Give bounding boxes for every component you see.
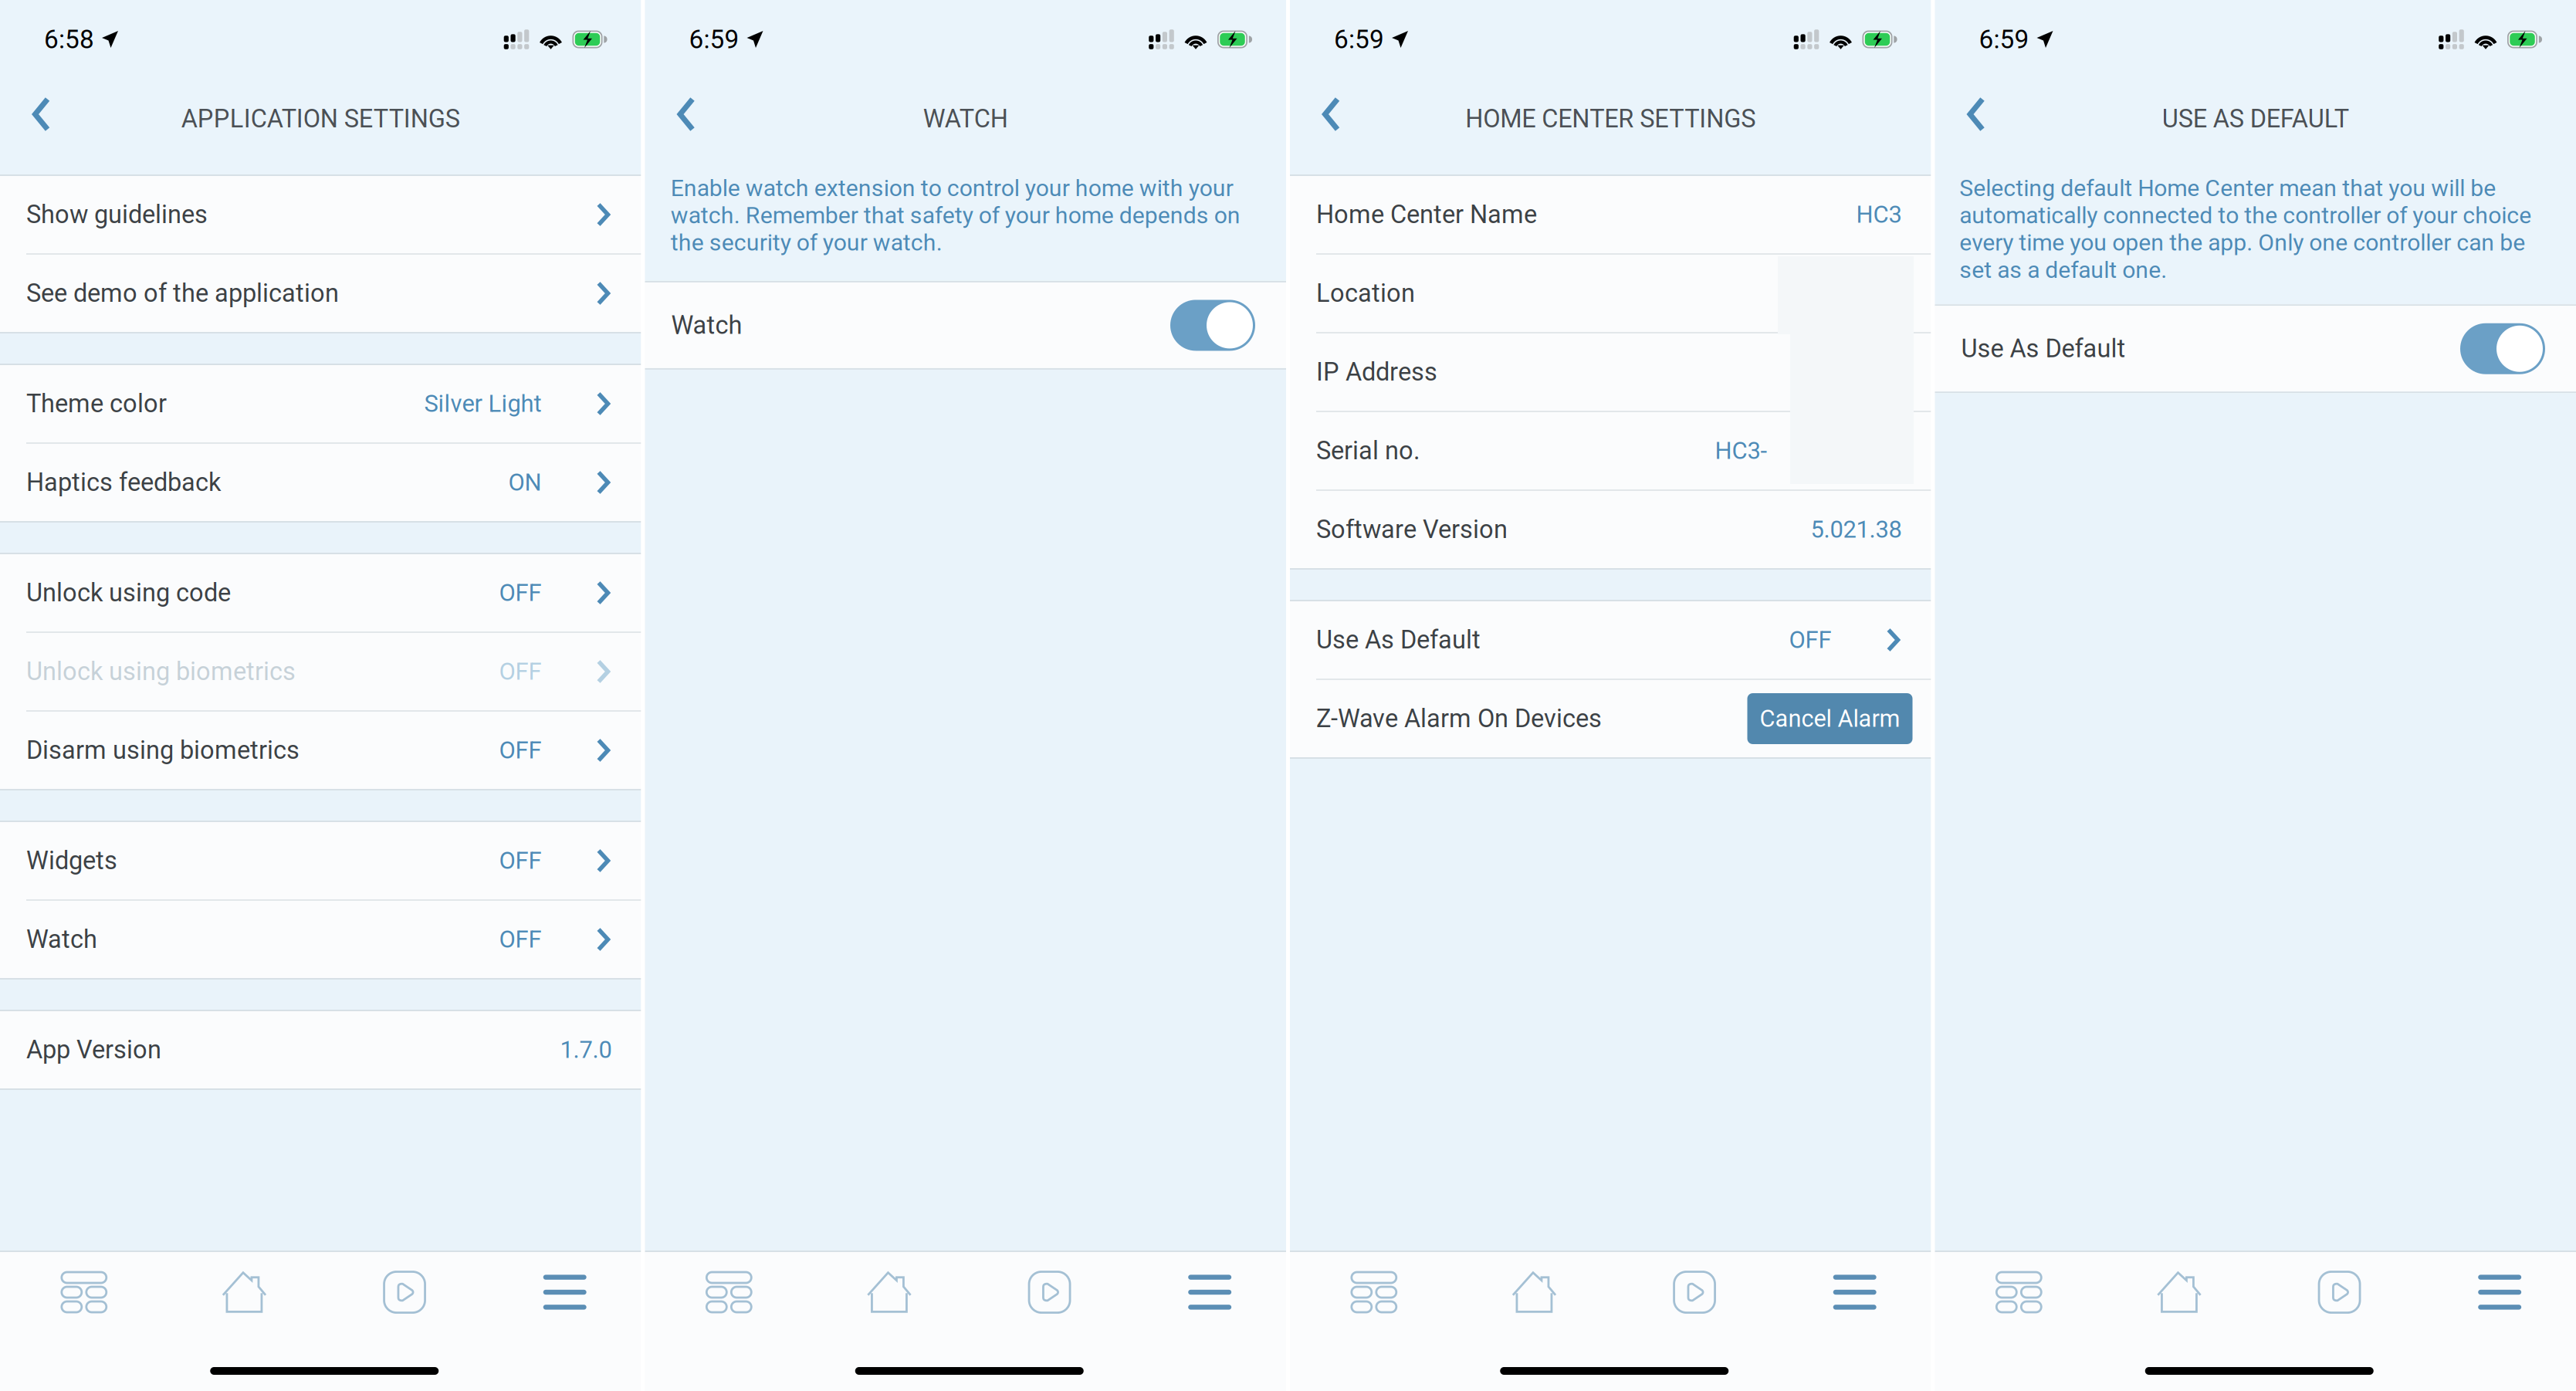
- button[interactable]: Use As Default: [1935, 306, 2576, 392]
- button[interactable]: Disarm using biometrics: [0, 712, 641, 789]
- staticText: 1.7.0: [560, 1036, 612, 1064]
- button[interactable]: Watch: [645, 282, 1286, 368]
- button[interactable]: Back: [0, 94, 69, 134]
- staticText: HC3: [1856, 201, 1902, 229]
- button[interactable]: Scenes: [324, 1252, 485, 1332]
- staticText: Show guidelines: [26, 200, 208, 229]
- button[interactable]: App Version: [0, 1011, 641, 1088]
- button[interactable]: Home: [809, 1252, 969, 1332]
- button[interactable]: Dashboard: [4, 1252, 164, 1332]
- button[interactable]: Menu: [2420, 1252, 2576, 1332]
- button[interactable]: Haptics feedback: [0, 444, 641, 521]
- button[interactable]: Home Center Name: [1290, 176, 1931, 253]
- staticText: Enable watch extension to control your h…: [671, 174, 1240, 256]
- button[interactable]: Dashboard: [1294, 1252, 1454, 1332]
- staticText: OFF: [499, 736, 542, 764]
- staticText: Home Center Name: [1316, 200, 1537, 229]
- staticText: HC3-: [1715, 437, 1767, 465]
- button[interactable]: Use As Default: [1290, 601, 1931, 679]
- staticText: Haptics feedback: [26, 468, 221, 497]
- button[interactable]: Home: [1454, 1252, 1614, 1332]
- staticText: OFF: [499, 925, 542, 953]
- staticText: Software Version: [1316, 515, 1508, 544]
- button[interactable]: Dashboard: [649, 1252, 809, 1332]
- staticText: 5.021.38: [1811, 516, 1902, 544]
- staticText: Use As Default: [1316, 625, 1481, 655]
- staticText: ON: [508, 468, 542, 496]
- button[interactable]: Home: [2099, 1252, 2259, 1332]
- staticText: USE AS DEFAULT: [2162, 104, 2349, 134]
- button[interactable]: Unlock using code: [0, 554, 641, 631]
- button[interactable]: Menu: [1775, 1252, 1935, 1332]
- staticText: OFF: [499, 579, 542, 607]
- staticText: Watch: [26, 925, 97, 954]
- button[interactable]: Z-Wave Alarm On Devices: [1290, 680, 1931, 757]
- staticText: OFF: [499, 658, 542, 686]
- button[interactable]: Menu: [1130, 1252, 1290, 1332]
- button[interactable]: Software Version: [1290, 491, 1931, 568]
- button[interactable]: Widgets: [0, 822, 641, 899]
- staticText: 6:59: [689, 24, 739, 54]
- staticText: Use As Default: [1961, 334, 2126, 363]
- button[interactable]: Scenes: [969, 1252, 1130, 1332]
- staticText: Unlock using biometrics: [26, 657, 296, 686]
- button[interactable]: Back: [1290, 94, 1359, 134]
- staticText: Silver Light: [424, 390, 542, 418]
- staticText: Location: [1316, 279, 1415, 308]
- button[interactable]: Back: [645, 94, 714, 134]
- button[interactable]: IP Address: [1290, 333, 1931, 411]
- staticText: Z-Wave Alarm On Devices: [1316, 704, 1602, 733]
- staticText: WATCH: [923, 104, 1008, 134]
- staticText: 6:59: [1334, 24, 1384, 54]
- button[interactable]: Location: [1290, 255, 1931, 332]
- staticText: Selecting default Home Center mean that …: [1959, 174, 2531, 283]
- staticText: OFF: [499, 847, 542, 875]
- button[interactable]: Scenes: [2259, 1252, 2420, 1332]
- button[interactable]: See demo of the application: [0, 255, 641, 332]
- staticText: HOME CENTER SETTINGS: [1465, 104, 1756, 134]
- button[interactable]: Menu: [485, 1252, 645, 1332]
- button[interactable]: Home: [164, 1252, 324, 1332]
- button[interactable]: Back: [1935, 94, 2004, 134]
- staticText: 6:59: [1979, 24, 2029, 54]
- staticText: Cancel Alarm: [1760, 705, 1900, 732]
- staticText: IP Address: [1316, 357, 1437, 387]
- button[interactable]: Watch: [0, 901, 641, 978]
- button[interactable]: Theme color: [0, 365, 641, 442]
- staticText: APPLICATION SETTINGS: [181, 104, 460, 134]
- button[interactable]: Serial no.: [1290, 412, 1931, 489]
- staticText: See demo of the application: [26, 279, 339, 308]
- button[interactable]: Scenes: [1614, 1252, 1775, 1332]
- button[interactable]: Dashboard: [1939, 1252, 2099, 1332]
- staticText: 6:58: [44, 24, 94, 54]
- staticText: App Version: [26, 1035, 161, 1064]
- staticText: OFF: [1789, 626, 1831, 654]
- button[interactable]: Show guidelines: [0, 176, 641, 253]
- staticText: Unlock using code: [26, 578, 231, 608]
- staticText: Watch: [671, 311, 742, 340]
- button[interactable]: Unlock using biometrics: [0, 633, 641, 710]
- staticText: Serial no.: [1316, 436, 1420, 465]
- staticText: Widgets: [26, 846, 117, 875]
- staticText: Disarm using biometrics: [26, 736, 300, 765]
- staticText: Theme color: [26, 389, 167, 418]
